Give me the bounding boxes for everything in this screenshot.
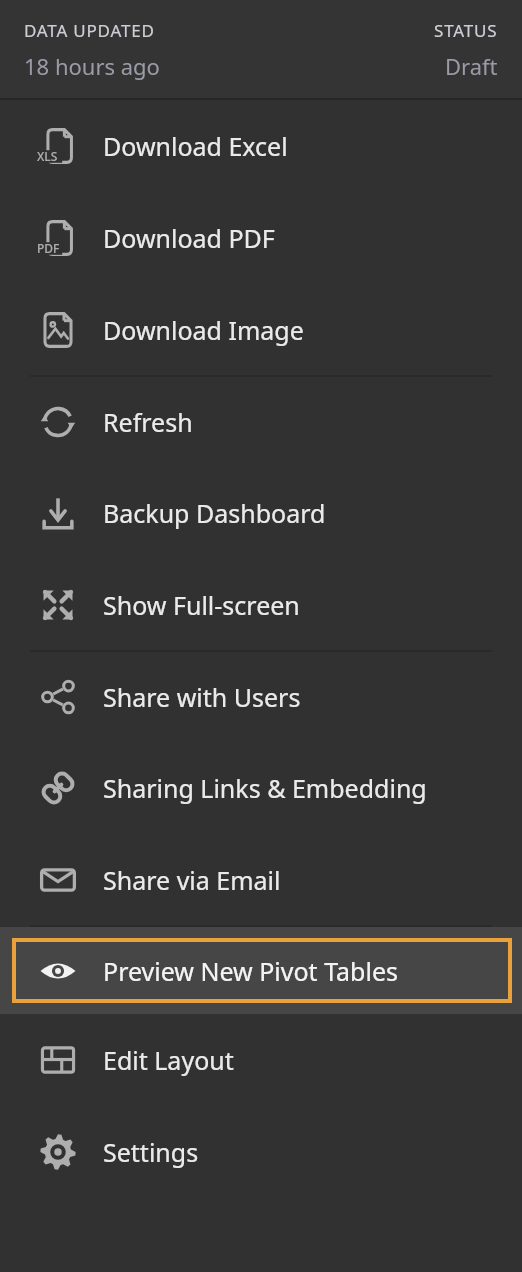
button[interactable]: Edit Layout: [0, 1014, 522, 1106]
staticText: PDF: [37, 240, 60, 256]
staticText: Share with Users: [103, 680, 301, 714]
staticText: Sharing Links & Embedding: [103, 771, 427, 805]
button[interactable]: Settings: [0, 1106, 522, 1198]
button[interactable]: Preview New Pivot Tables: [16, 942, 508, 999]
button[interactable]: Download Image: [0, 284, 522, 375]
staticText: Edit Layout: [103, 1043, 234, 1077]
button[interactable]: Sharing Links & Embedding: [0, 742, 522, 834]
button[interactable]: Refresh: [0, 377, 522, 467]
button[interactable]: PDF: [0, 192, 522, 284]
staticText: Show Full-screen: [103, 588, 300, 622]
staticText: Settings: [103, 1135, 199, 1169]
staticText: STATUS: [434, 19, 498, 42]
staticText: Draft: [445, 51, 498, 81]
staticText: Backup Dashboard: [103, 496, 326, 530]
button[interactable]: Show Full-screen: [0, 559, 522, 650]
button[interactable]: Share with Users: [0, 652, 522, 742]
staticText: 18 hours ago: [24, 51, 160, 81]
button[interactable]: Backup Dashboard: [0, 467, 522, 559]
button[interactable]: XLS: [0, 100, 522, 192]
staticText: DATA UPDATED: [24, 19, 155, 42]
staticText: Preview New Pivot Tables: [103, 954, 398, 988]
staticText: Refresh: [103, 405, 193, 439]
button[interactable]: Share via Email: [0, 834, 522, 925]
staticText: Share via Email: [103, 863, 281, 897]
staticText: XLS: [37, 148, 58, 164]
staticText: Download PDF: [103, 221, 275, 255]
staticText: Download Excel: [103, 129, 288, 163]
staticText: Download Image: [103, 313, 304, 347]
